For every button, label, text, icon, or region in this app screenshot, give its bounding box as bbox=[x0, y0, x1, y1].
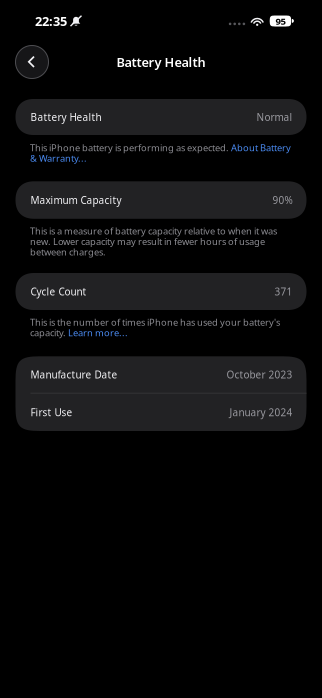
staticText: Battery Health bbox=[30, 110, 101, 124]
button[interactable]: About Battery bbox=[231, 141, 291, 154]
staticText: About Battery bbox=[231, 141, 291, 154]
staticText: First Use bbox=[30, 405, 72, 419]
staticText: Normal bbox=[256, 110, 292, 124]
staticText: Maximum Capacity bbox=[30, 193, 121, 207]
staticText: Battery Health bbox=[116, 53, 205, 71]
button[interactable]: Learn more... bbox=[68, 326, 128, 339]
staticText: October 2023 bbox=[226, 368, 292, 381]
staticText: 90% bbox=[272, 193, 292, 207]
staticText: new. Lower capacity may result in fewer … bbox=[30, 235, 265, 248]
staticText: Cycle Count bbox=[30, 285, 86, 298]
staticText: & Warranty... bbox=[30, 152, 87, 164]
staticText: This is a measure of battery capacity re… bbox=[30, 225, 277, 237]
staticText: 22:35 bbox=[35, 12, 67, 30]
staticText: 371 bbox=[274, 285, 292, 298]
staticText: Learn more... bbox=[68, 326, 128, 339]
staticText: between charges. bbox=[30, 245, 106, 258]
staticText: 95 bbox=[275, 14, 285, 28]
staticText: Manufacture Date bbox=[30, 368, 117, 381]
staticText: This iPhone battery is performing as exp… bbox=[30, 141, 231, 154]
button[interactable]: Back bbox=[15, 45, 49, 79]
staticText: This is the number of times iPhone has u… bbox=[30, 316, 280, 328]
staticText: January 2024 bbox=[229, 405, 292, 419]
staticText: capacity. bbox=[30, 326, 68, 339]
